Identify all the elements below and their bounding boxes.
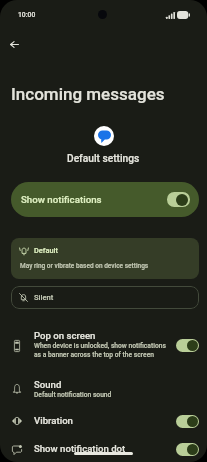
button[interactable]: Silent xyxy=(11,286,199,309)
staticText: Sound xyxy=(34,379,62,390)
staticText: 10:00 xyxy=(18,11,36,19)
staticText: Pop on screen xyxy=(34,330,96,341)
staticText: When device is unlocked, show notificati… xyxy=(34,342,166,359)
button[interactable]: Show notification dot xyxy=(0,435,207,462)
button[interactable]: Back xyxy=(3,33,25,55)
button[interactable]: Sound xyxy=(0,371,207,403)
staticText: Default settings xyxy=(67,153,140,165)
staticText: May ring or vibrate based on device sett… xyxy=(20,262,149,270)
staticText: Show notifications xyxy=(21,194,102,205)
staticText: Vibration xyxy=(34,415,73,426)
staticText: Default xyxy=(34,246,58,255)
staticText: Default notification sound xyxy=(34,391,112,399)
button[interactable]: Show notifications xyxy=(11,182,199,217)
staticText: Incoming messages xyxy=(11,84,165,104)
button[interactable]: Default xyxy=(11,238,199,279)
button[interactable]: Pop on screen xyxy=(0,322,207,368)
button[interactable]: Vibration xyxy=(0,407,207,435)
staticText: Silent xyxy=(34,293,54,302)
staticText: Show notification dot xyxy=(34,443,126,454)
